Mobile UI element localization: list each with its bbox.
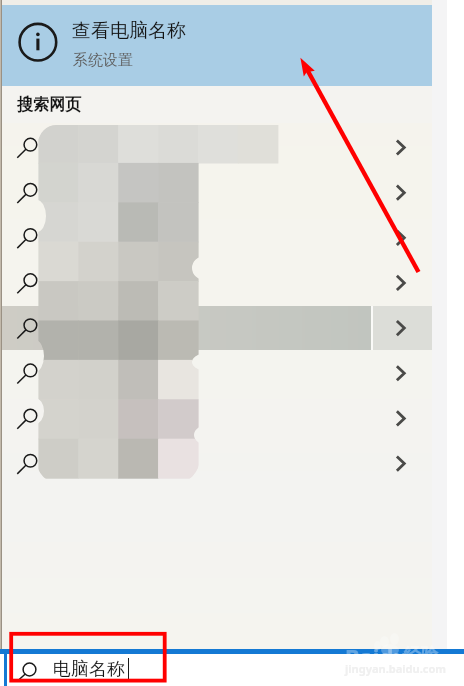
button[interactable]: Search suggestion xyxy=(2,394,432,439)
button[interactable]: Search suggestion xyxy=(2,439,432,484)
button[interactable]: Search suggestion xyxy=(2,123,432,168)
staticText: 查看电脑名称 xyxy=(72,19,186,43)
button[interactable]: Search suggestion xyxy=(2,259,432,304)
staticText: Baidu xyxy=(345,641,408,671)
staticText: 电脑名称 xyxy=(53,658,125,681)
staticText: 搜索网页 xyxy=(17,95,81,115)
staticText: 经验 xyxy=(404,644,438,665)
button[interactable]: 查看电脑名称 xyxy=(2,5,432,86)
button[interactable]: Search suggestion xyxy=(2,349,432,394)
button[interactable]: Search suggestion xyxy=(2,304,432,349)
staticText: 系统设置 xyxy=(73,51,133,70)
button[interactable]: Search suggestion xyxy=(2,168,432,213)
button[interactable]: 电脑名称 xyxy=(7,654,464,686)
button[interactable]: Search suggestion xyxy=(2,214,432,259)
button[interactable] xyxy=(2,306,432,350)
staticText: jingyan.baidu.com xyxy=(345,661,447,676)
